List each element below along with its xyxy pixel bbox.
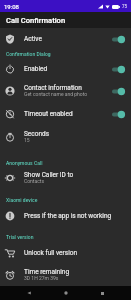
staticText: 15 xyxy=(24,137,30,143)
staticText: Call Confirmation xyxy=(6,16,66,25)
staticText: Xiaomi device xyxy=(6,197,38,203)
staticText: Press if the app is not working xyxy=(24,212,112,220)
staticText: Active xyxy=(24,35,42,43)
staticText: Confirmation Dialog xyxy=(6,51,51,57)
button[interactable]: Contact information xyxy=(0,78,131,103)
button[interactable]: Home xyxy=(59,286,73,300)
button[interactable]: Seconds xyxy=(0,124,131,149)
staticText: 3D 1H 27m 39s xyxy=(24,275,59,281)
button[interactable]: Show Caller ID to xyxy=(0,168,131,187)
button[interactable]: Unlock full version xyxy=(0,243,131,263)
button[interactable]: Toggle xyxy=(111,107,126,121)
staticText: 75 xyxy=(122,4,128,9)
staticText: Enabled xyxy=(24,65,48,73)
staticText: Unlock full version xyxy=(24,249,78,257)
button[interactable]: Press if the app is not working xyxy=(0,206,131,226)
staticText: Trial version xyxy=(6,234,34,240)
staticText: Seconds xyxy=(24,130,50,138)
button[interactable]: Recents xyxy=(95,286,109,300)
button[interactable]: Toggle xyxy=(111,32,126,46)
staticText: Contacts xyxy=(24,178,45,184)
button[interactable]: Time remaining xyxy=(0,263,131,286)
button[interactable]: Toggle xyxy=(111,62,126,76)
staticText: Contact information xyxy=(24,84,82,92)
button[interactable]: Back xyxy=(22,286,36,300)
staticText: Get contact name and photo xyxy=(24,91,88,97)
button[interactable]: Toggle xyxy=(111,84,126,98)
staticText: Show Caller ID to xyxy=(24,171,74,179)
staticText: Timeout enabled xyxy=(24,110,73,118)
staticText: Time remaining xyxy=(24,268,70,276)
button[interactable]: Timeout enabled xyxy=(0,103,131,124)
staticText: 19:08 xyxy=(4,3,19,10)
button[interactable]: Enabled xyxy=(0,59,131,78)
staticText: Anonymous Call xyxy=(6,160,43,166)
button[interactable]: Active xyxy=(0,28,131,49)
